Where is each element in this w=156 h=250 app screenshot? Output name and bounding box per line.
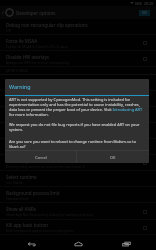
- staticText: Flash screen when apps do long operation…: [6, 84, 75, 89]
- button[interactable]: Force 4x MSAA: [0, 35, 156, 50]
- staticText: We request you do not file bug reports i…: [9, 122, 144, 132]
- staticText: Kill app back button: [6, 222, 48, 228]
- staticText: Select runtime: [6, 174, 37, 180]
- staticText: Force 4x MSAA: [6, 38, 38, 44]
- staticText: Always use GPU for screen compositing: [6, 60, 69, 65]
- staticText: Show CPU usage: [6, 94, 42, 100]
- button[interactable]: Kill app back button: [0, 220, 156, 234]
- staticText: Destroy every activity as soon as the us…: [6, 164, 86, 169]
- button[interactable]: Disable HW overlays: [0, 51, 156, 66]
- staticText: Developer options: [16, 10, 56, 16]
- staticText: 60%: [135, 1, 143, 6]
- staticText: Screen overlay showing current CPU usage: [6, 100, 75, 105]
- button[interactable]: Developer options toggle: [139, 10, 150, 16]
- staticText: Show App Not Responding dialog for backg…: [6, 212, 94, 217]
- button[interactable]: Back: [14, 237, 48, 250]
- button[interactable]: Show all ANRs: [0, 203, 156, 219]
- staticText: Strict mode enabled: [6, 78, 49, 84]
- staticText: 20:20: [144, 1, 154, 6]
- staticText: ON: [142, 11, 147, 15]
- staticText: Disable HW overlays: [6, 54, 49, 60]
- staticText: Show all ANRs: [6, 206, 36, 212]
- button[interactable]: Debug non rectangular clip operations: [0, 19, 156, 34]
- staticText: Enable OpenGL traces: [6, 126, 53, 132]
- staticText: Background process limit: [6, 190, 60, 196]
- staticText: Are you sure you want to reboot to chang…: [9, 139, 144, 149]
- button[interactable]: Profile GPU rendering: [0, 107, 156, 122]
- button[interactable]: Cancel: [5, 151, 76, 163]
- button[interactable]: OK: [77, 151, 149, 163]
- button[interactable]: Navigate up: [0, 6, 5, 19]
- staticText: Don't keep activities: [6, 158, 49, 164]
- staticText: Use Dalvik: [6, 180, 23, 185]
- button[interactable]: Home: [61, 237, 95, 250]
- staticText: Kills foreground app process on long pre…: [6, 228, 75, 233]
- staticText: Debug non rectangular clip operations: [6, 22, 88, 28]
- staticText: Off: [6, 28, 11, 33]
- staticText: Standard limit: [6, 196, 29, 201]
- staticText: ART is not supported by CyanogenMod. Thi…: [9, 97, 144, 117]
- staticText: OK: [110, 155, 116, 160]
- staticText: Enable view attribute inspection: [6, 142, 74, 148]
- button[interactable]: Background process limit: [0, 187, 156, 202]
- button[interactable]: Enable view attribute inspection: [0, 139, 156, 154]
- button[interactable]: Select runtime: [0, 171, 156, 186]
- staticText: Cancel: [35, 155, 47, 160]
- button[interactable]: Show CPU usage: [0, 91, 156, 106]
- button[interactable]: Strict mode enabled: [0, 75, 156, 90]
- button[interactable]: Enable OpenGL traces: [0, 123, 156, 138]
- staticText: Profile GPU rendering: [6, 110, 53, 116]
- button[interactable]: Don't keep activities: [0, 155, 156, 170]
- staticText: MONITORING: [6, 68, 29, 73]
- staticText: Off: [6, 148, 11, 153]
- staticText: Warning: [9, 83, 31, 90]
- staticText: Enable 4x MSAA in OpenGL ES 2.0 apps: [6, 44, 69, 49]
- button[interactable]: Recent apps: [109, 237, 143, 250]
